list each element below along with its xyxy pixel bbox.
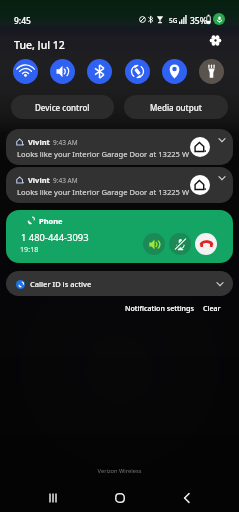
button[interactable]: Bluetooth	[87, 59, 112, 84]
button[interactable]: Expand notification	[215, 133, 229, 147]
button[interactable]: Speaker	[143, 233, 165, 255]
button[interactable]: Vivint	[6, 167, 233, 203]
button[interactable]: Auto rotate	[125, 59, 150, 84]
staticText: 19:18	[20, 244, 39, 254]
button[interactable]: Caller ID is active	[6, 271, 233, 296]
button[interactable]: Back	[171, 484, 203, 512]
button[interactable]: Wi-Fi	[13, 59, 38, 84]
button[interactable]: Location	[162, 59, 187, 84]
button[interactable]: Expand notification	[215, 171, 229, 185]
button[interactable]: Vivint	[6, 129, 233, 165]
staticText: 9:45	[14, 15, 31, 27]
staticText: Verizon Wireless	[0, 467, 239, 475]
staticText: Tue, Jul 12	[14, 38, 65, 50]
staticText: Vivint	[28, 175, 50, 185]
staticText: 5G	[169, 16, 178, 25]
button[interactable]: Device control	[11, 95, 114, 119]
staticText: Clear	[203, 303, 221, 313]
button[interactable]: Microphone in use	[213, 13, 225, 25]
staticText: Device control	[35, 102, 90, 113]
staticText: 9:43 AM	[53, 176, 78, 185]
staticText: 9:43 AM	[53, 138, 78, 147]
button[interactable]: Expand	[213, 277, 227, 291]
staticText: Media output	[150, 102, 202, 113]
staticText: Notification settings	[125, 303, 194, 313]
staticText: 35%	[190, 15, 207, 27]
staticText: Caller ID is active	[30, 279, 92, 289]
button[interactable]: Notification settings	[122, 300, 197, 316]
staticText: Looks like your Interior Garage Door at …	[17, 187, 189, 197]
button[interactable]: Flashlight	[199, 59, 224, 84]
staticText: Looks like your Interior Garage Door at …	[17, 149, 189, 159]
button[interactable]: Home	[104, 484, 136, 512]
staticText: 1 480-444-3093	[21, 231, 89, 244]
staticText: Vivint	[28, 137, 50, 147]
button[interactable]: Phone	[6, 210, 233, 263]
button[interactable]: Sound	[50, 59, 75, 84]
button[interactable]: Media output	[124, 95, 228, 119]
staticText: Phone	[39, 216, 63, 226]
button[interactable]: Settings	[205, 34, 225, 46]
button[interactable]: Recent apps	[36, 484, 69, 512]
button[interactable]: End call	[195, 233, 217, 255]
button[interactable]: Clear	[200, 300, 224, 316]
button[interactable]: Mute	[169, 233, 191, 255]
